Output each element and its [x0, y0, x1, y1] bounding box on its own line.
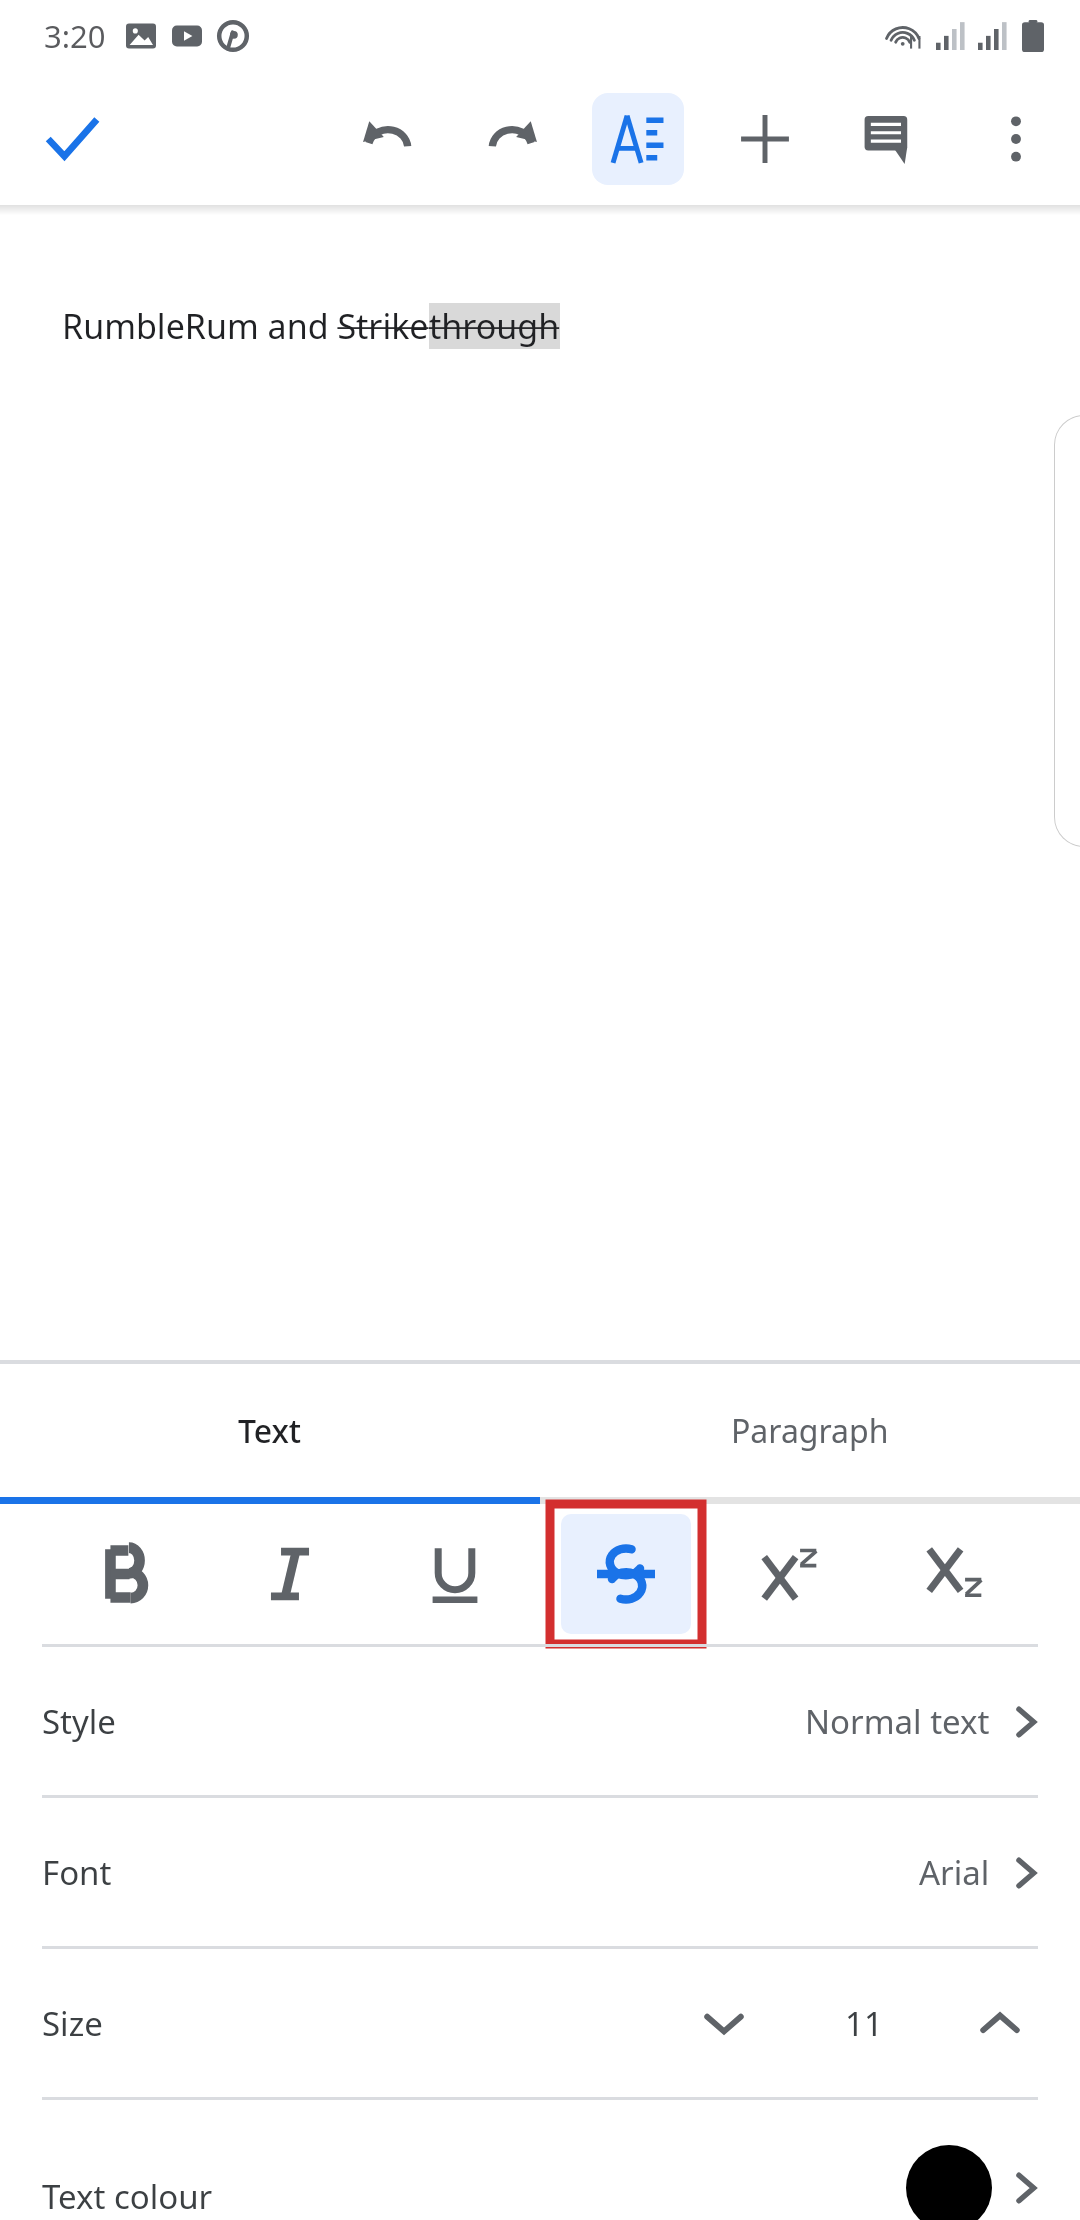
button[interactable]: Format — [225, 1514, 355, 1634]
staticText: Text — [238, 1409, 302, 1453]
button[interactable]: Text — [0, 1364, 540, 1497]
button[interactable]: Done — [22, 89, 122, 189]
staticText: Paragraph — [731, 1409, 889, 1453]
button[interactable]: Format — [390, 1514, 520, 1634]
button[interactable]: Font — [0, 1798, 1080, 1946]
staticText: Size — [42, 2001, 103, 2046]
button[interactable]: Format — [60, 1514, 190, 1634]
staticText: Normal text — [805, 1699, 990, 1744]
staticText: Font — [42, 1850, 112, 1895]
staticText: 11 — [845, 2001, 883, 2046]
button[interactable]: Paragraph — [540, 1364, 1080, 1497]
button[interactable]: Increase font size — [952, 1975, 1048, 2071]
button[interactable]: Insert — [719, 93, 811, 185]
staticText: Arial — [919, 1850, 990, 1895]
button[interactable]: Format — [725, 1514, 855, 1634]
staticText: Text colour — [42, 2174, 213, 2219]
button[interactable]: More options — [970, 93, 1062, 185]
button[interactable]: Decrease font size — [676, 1975, 772, 2071]
staticText: 3:20 — [44, 15, 106, 57]
staticText: Style — [42, 1699, 116, 1744]
button[interactable]: Format — [890, 1514, 1020, 1634]
button[interactable]: Style — [0, 1647, 1080, 1795]
button[interactable]: Undo — [342, 93, 434, 185]
button[interactable]: Redo — [466, 93, 558, 185]
button[interactable]: Text colour — [0, 2100, 1080, 2220]
staticText: RumbleRum and Strike — [62, 303, 429, 349]
button[interactable]: Strikethrough — [561, 1514, 691, 1634]
button[interactable]: Comments — [842, 93, 934, 185]
staticText: through — [429, 303, 560, 349]
button[interactable]: Text formatting — [592, 93, 684, 185]
